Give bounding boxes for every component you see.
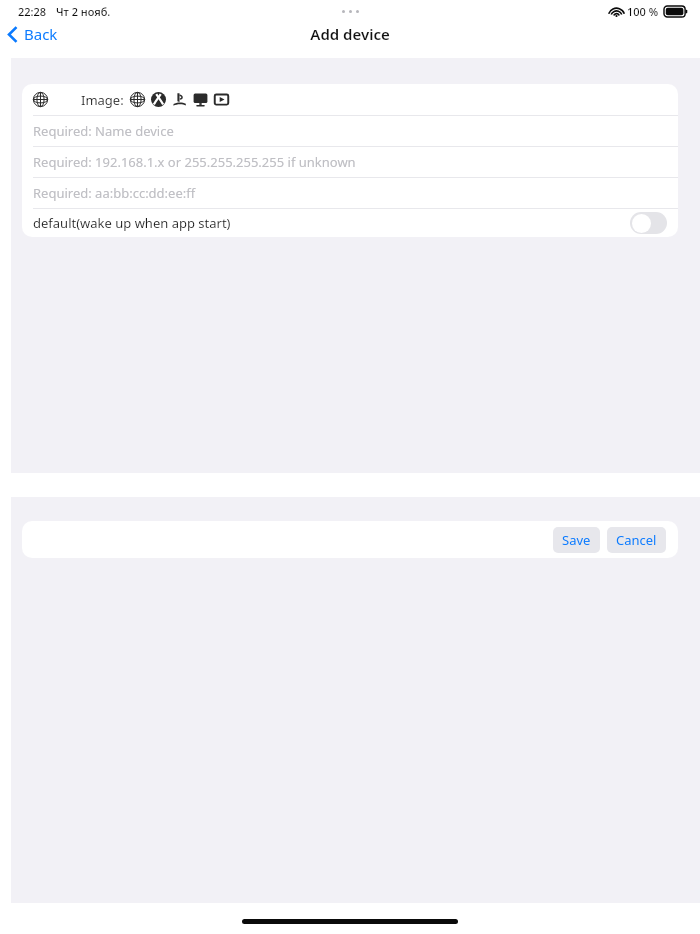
button[interactable]: Back bbox=[0, 20, 68, 48]
button[interactable]: Xbox image bbox=[151, 92, 166, 107]
staticText: Чт 2 нояб. bbox=[56, 4, 111, 19]
staticText: 100 % bbox=[627, 4, 659, 19]
staticText: Add device bbox=[310, 24, 390, 44]
other: Device type globe bbox=[33, 92, 48, 107]
other: Wake up when app start toggle bbox=[630, 212, 667, 234]
button[interactable]: Save bbox=[553, 527, 600, 553]
staticText: Required: 192.168.1.x or 255.255.255.255… bbox=[33, 153, 356, 171]
staticText: Required: aa:bb:cc:dd:ee:ff bbox=[33, 184, 196, 202]
button[interactable]: Desktop image bbox=[193, 92, 208, 107]
button[interactable]: default(wake up when app start) bbox=[22, 209, 678, 237]
staticText: Image: bbox=[81, 91, 124, 109]
staticText: Cancel bbox=[616, 531, 657, 549]
button[interactable]: Required: 192.168.1.x or 255.255.255.255… bbox=[22, 147, 678, 177]
button[interactable]: Required: aa:bb:cc:dd:ee:ff bbox=[22, 178, 678, 208]
staticText: 22:28 bbox=[18, 4, 47, 19]
staticText: default(wake up when app start) bbox=[33, 214, 231, 232]
button[interactable]: Required: Name device bbox=[22, 116, 678, 146]
staticText: Back bbox=[24, 24, 58, 44]
staticText: Save bbox=[562, 531, 591, 549]
button[interactable]: Globe image bbox=[130, 92, 145, 107]
staticText: Required: Name device bbox=[33, 122, 174, 140]
button[interactable]: Media player image bbox=[214, 92, 229, 107]
button[interactable]: Cancel bbox=[607, 527, 666, 553]
button[interactable]: PlayStation image bbox=[172, 92, 187, 107]
